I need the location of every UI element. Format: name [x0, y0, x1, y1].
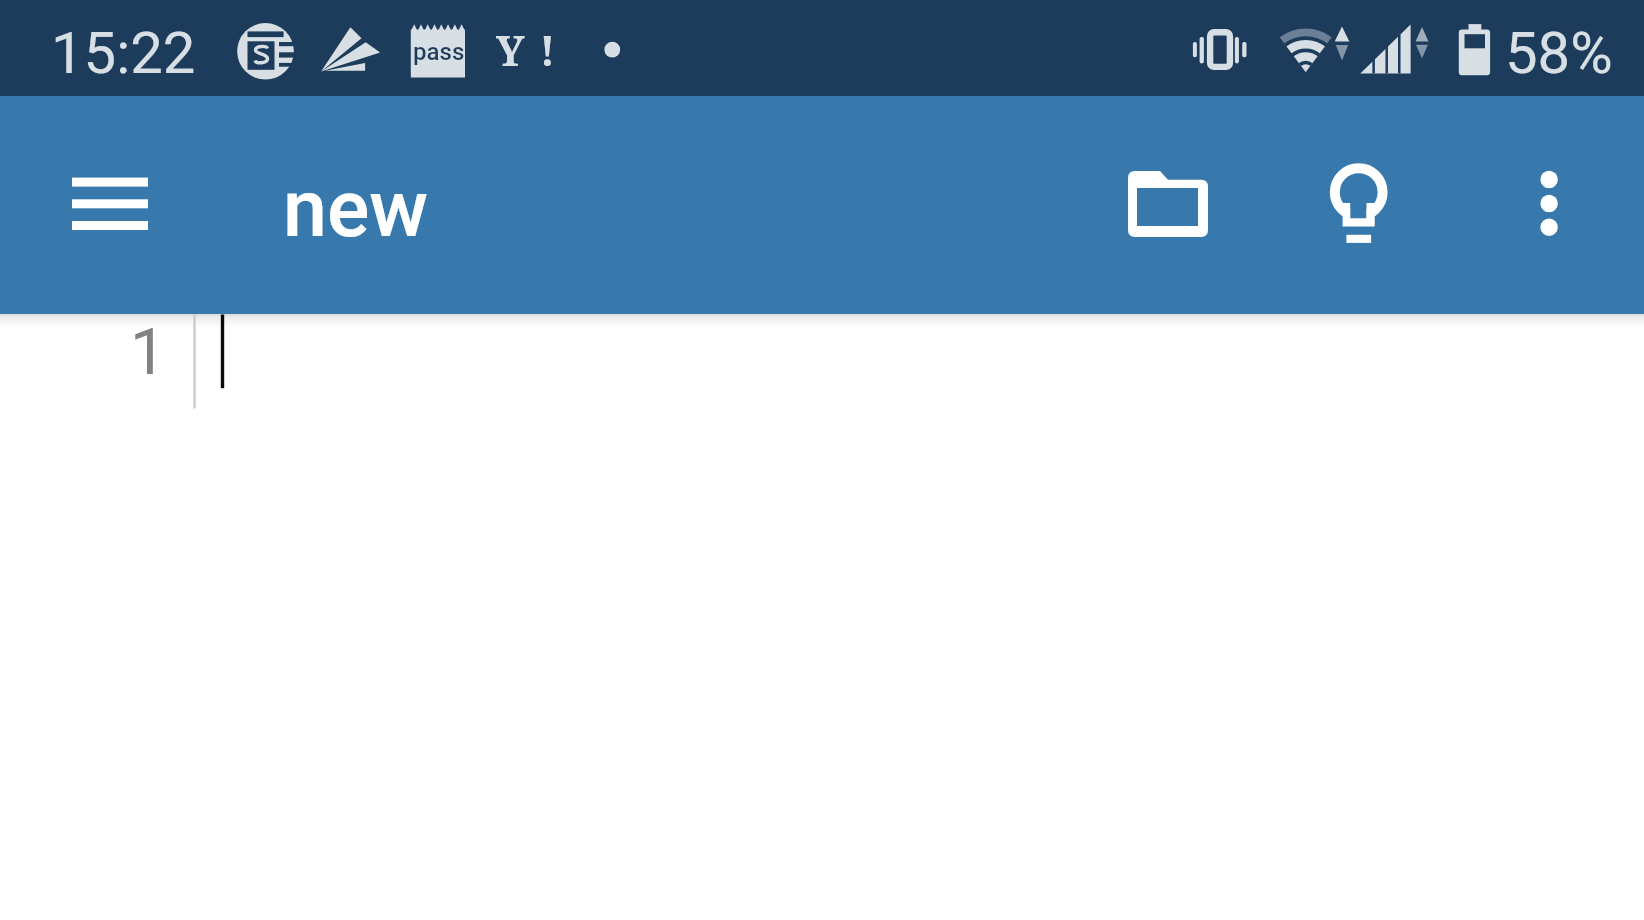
button[interactable]: Open folder [1108, 151, 1228, 271]
staticText: pass [413, 38, 465, 66]
staticText: 58% [1505, 19, 1613, 87]
staticText: 1 [130, 315, 166, 390]
staticText: Y! [496, 22, 571, 78]
button[interactable]: More options [1492, 148, 1606, 262]
button[interactable]: Hint [1300, 151, 1420, 271]
button[interactable]: Navigation menu [56, 152, 164, 260]
staticText: new [283, 163, 429, 256]
staticText: 15:22 [51, 19, 196, 87]
button[interactable]: 1 [0, 314, 1644, 920]
